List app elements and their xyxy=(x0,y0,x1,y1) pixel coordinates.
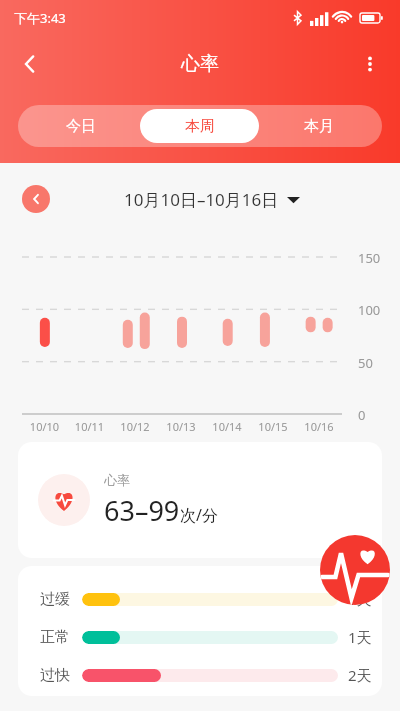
staticText: 10/11 xyxy=(67,419,112,434)
staticText: 本周 xyxy=(185,117,215,136)
staticText: 下午3:43 xyxy=(14,9,66,27)
staticText: 10/14 xyxy=(204,419,250,434)
staticText: 100 xyxy=(358,301,381,319)
staticText: 2天 xyxy=(348,665,372,685)
staticText: 0 xyxy=(358,406,366,424)
staticText: 今日 xyxy=(66,117,96,136)
button[interactable]: Measure heart rate xyxy=(320,535,390,605)
staticText: 1天 xyxy=(348,589,372,609)
button[interactable]: 本月 xyxy=(259,109,378,143)
staticText: 10/16 xyxy=(296,419,342,434)
staticText: 1天 xyxy=(348,627,372,647)
staticText: 10/10 xyxy=(22,419,67,434)
button[interactable]: 过快 xyxy=(18,658,382,692)
staticText: 50 xyxy=(358,354,373,372)
staticText: 心率 xyxy=(104,472,130,488)
staticText: 正常 xyxy=(40,628,70,647)
staticText: 本月 xyxy=(304,117,334,136)
staticText: 150 xyxy=(358,249,381,267)
button[interactable]: 本周 xyxy=(140,109,259,143)
staticText: 10/13 xyxy=(158,419,204,434)
staticText: 10/12 xyxy=(112,419,158,434)
button[interactable]: Back xyxy=(8,42,52,86)
button[interactable]: 正常 xyxy=(18,620,382,654)
button[interactable]: More options xyxy=(348,42,392,86)
staticText: 过快 xyxy=(40,666,70,685)
button[interactable]: 10月10日–10月16日 xyxy=(124,188,300,211)
staticText: 次/分 xyxy=(180,504,218,526)
button[interactable]: Previous week xyxy=(22,185,50,213)
staticText: 过缓 xyxy=(40,590,70,609)
staticText: 10月10日–10月16日 xyxy=(124,188,279,211)
button[interactable]: 今日 xyxy=(22,109,140,143)
staticText: 63–99 xyxy=(104,492,180,529)
button[interactable]: 过缓 xyxy=(18,582,382,616)
button[interactable]: 心率 xyxy=(18,442,382,558)
staticText: 10/15 xyxy=(250,419,296,434)
staticText: 心率 xyxy=(181,52,219,76)
